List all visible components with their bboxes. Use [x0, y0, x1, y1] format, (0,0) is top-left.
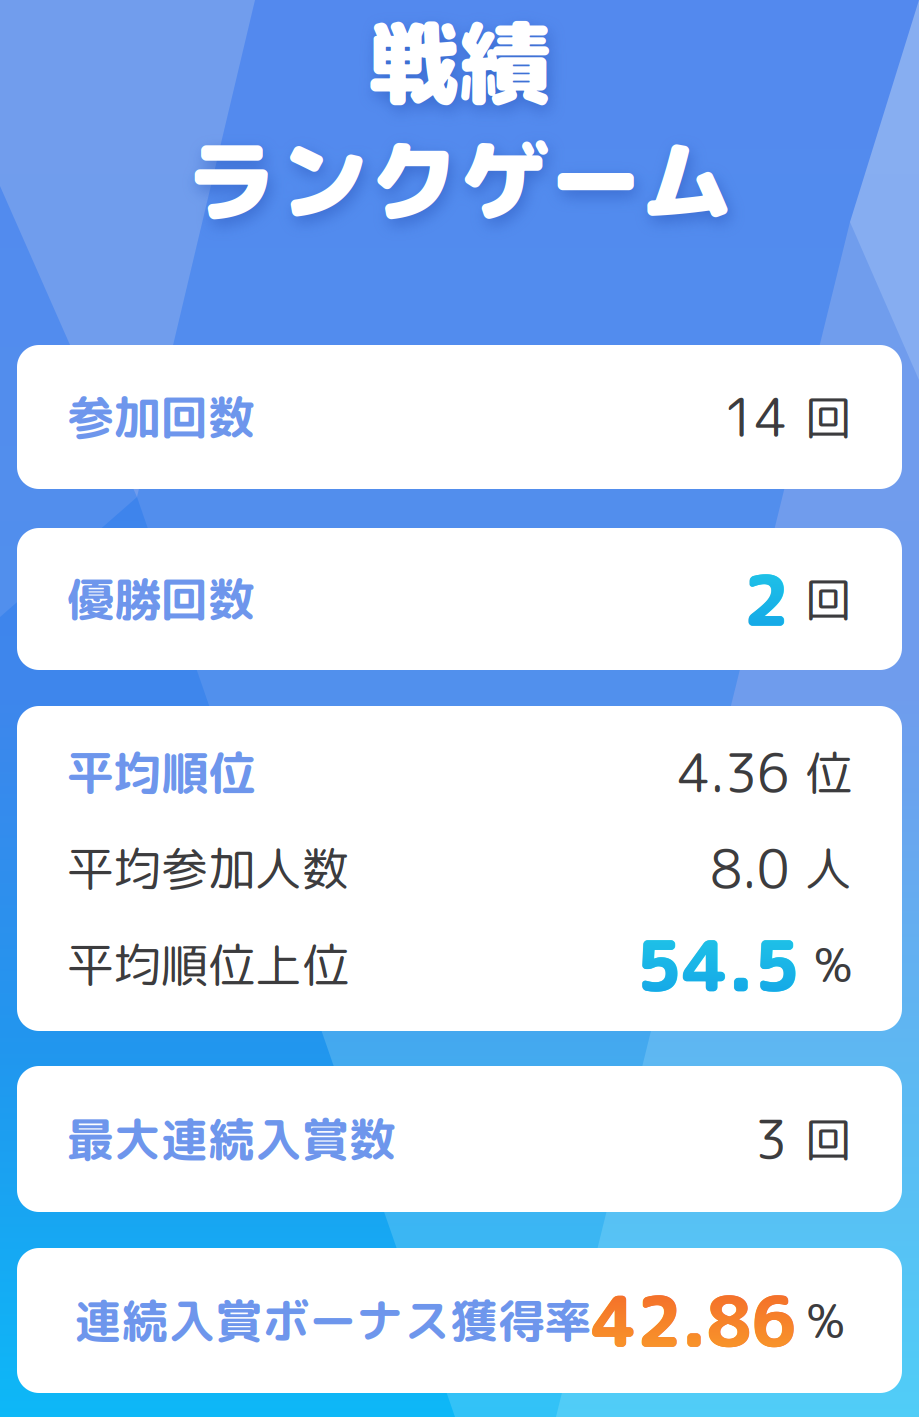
- staticText: 3: [755, 1103, 787, 1175]
- staticText: 最大連続入賞数: [67, 1106, 396, 1171]
- staticText: 優勝回数: [67, 566, 255, 631]
- staticText: 42.86: [591, 1272, 796, 1369]
- staticText: 平均順位上位: [67, 932, 349, 997]
- staticText: 戦績: [368, 0, 550, 125]
- staticText: 4.36: [678, 736, 789, 809]
- staticText: 平均順位: [67, 740, 255, 805]
- button[interactable]: 優勝回数: [17, 528, 902, 670]
- button[interactable]: 最大連続入賞数: [17, 1066, 902, 1212]
- staticText: 人: [805, 836, 852, 901]
- staticText: 参加回数: [67, 384, 255, 449]
- staticText: %: [806, 1288, 844, 1353]
- staticText: 連続入賞ボーナス獲得率: [74, 1288, 591, 1353]
- button[interactable]: 連続入賞ボーナス獲得率: [17, 1248, 902, 1393]
- staticText: %: [814, 932, 852, 997]
- staticText: 14: [723, 381, 787, 453]
- staticText: 8.0: [710, 832, 789, 905]
- button[interactable]: 参加回数: [17, 345, 902, 489]
- staticText: ランクゲーム: [186, 117, 732, 243]
- button[interactable]: 平均順位: [17, 706, 902, 1031]
- staticText: 位: [805, 740, 852, 805]
- staticText: 回: [805, 1106, 852, 1171]
- staticText: 54.5: [636, 915, 800, 1014]
- staticText: 回: [805, 566, 852, 631]
- staticText: 平均参加人数: [67, 836, 349, 901]
- staticText: 2: [743, 550, 789, 648]
- staticText: 回: [805, 384, 852, 449]
